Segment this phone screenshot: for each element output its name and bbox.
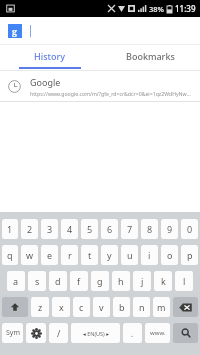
staticText: u — [127, 249, 133, 261]
staticText: d — [55, 275, 61, 287]
staticText: ◂ EN(US) ▸ — [83, 330, 109, 337]
staticText: o — [167, 249, 173, 261]
button[interactable]: m — [153, 297, 170, 317]
staticText: v — [99, 301, 104, 313]
button[interactable]: y — [101, 245, 118, 265]
staticText: f — [77, 275, 81, 287]
button[interactable]: n — [133, 297, 150, 317]
button[interactable]: z — [31, 297, 49, 317]
staticText: 11:39 — [175, 3, 196, 14]
staticText: Bookmarks — [126, 50, 175, 62]
staticText: 3 — [47, 223, 53, 235]
staticText: www. — [150, 329, 166, 337]
staticText: 9 — [167, 223, 173, 235]
button[interactable]: g — [8, 24, 22, 38]
button[interactable]: 6 — [101, 219, 118, 239]
button[interactable]: e — [41, 245, 58, 265]
staticText: x — [59, 301, 64, 313]
button[interactable]: Backspace — [173, 297, 198, 317]
button[interactable]: h — [112, 271, 130, 291]
staticText: i — [148, 249, 151, 261]
button[interactable]: r — [61, 245, 78, 265]
button[interactable]: x — [52, 297, 70, 317]
staticText: h — [118, 275, 124, 287]
staticText: History — [34, 50, 66, 62]
button[interactable]: f — [70, 271, 88, 291]
staticText: / — [57, 327, 61, 339]
button[interactable]: / — [49, 323, 68, 343]
staticText: g — [12, 25, 18, 37]
button[interactable]: c — [73, 297, 90, 317]
staticText: y — [107, 249, 112, 261]
button[interactable]: Bookmarks — [100, 45, 200, 67]
staticText: t — [88, 249, 92, 261]
button[interactable]: Google — [0, 71, 200, 101]
button[interactable]: g — [91, 271, 109, 291]
button[interactable]: k — [154, 271, 172, 291]
button[interactable]: Sym — [2, 323, 23, 343]
staticText: g — [97, 275, 103, 287]
staticText: 7 — [127, 223, 133, 235]
button[interactable]: i — [141, 245, 158, 265]
staticText: e — [47, 249, 53, 261]
button[interactable]: q — [2, 245, 18, 265]
staticText: Google — [30, 76, 61, 88]
button[interactable]: d — [49, 271, 67, 291]
button[interactable]: s — [28, 271, 46, 291]
button[interactable]: 4 — [61, 219, 78, 239]
staticText: 8 — [147, 223, 153, 235]
button[interactable]: j — [133, 271, 151, 291]
button[interactable]: a — [7, 271, 25, 291]
button[interactable]: v — [93, 297, 110, 317]
button[interactable]: t — [81, 245, 98, 265]
button[interactable]: l — [175, 271, 193, 291]
staticText: 6 — [107, 223, 113, 235]
staticText: l — [183, 275, 186, 287]
staticText: https://www.google.com/m/?gfe_rd=cr&dcr=… — [30, 90, 192, 97]
button[interactable]: 1 — [2, 219, 18, 239]
button[interactable]: ◂ EN(US) ▸ — [71, 323, 120, 343]
button[interactable]: Settings — [26, 323, 46, 343]
staticText: k — [161, 275, 166, 287]
staticText: c — [79, 301, 84, 313]
button[interactable]: 0 — [181, 219, 198, 239]
button[interactable]: 8 — [141, 219, 158, 239]
staticText: p — [187, 249, 193, 261]
staticText: . — [131, 328, 134, 339]
staticText: 0 — [187, 223, 193, 235]
staticText: 4 — [67, 223, 73, 235]
staticText: Sym — [6, 328, 20, 338]
button[interactable]: . — [123, 323, 142, 343]
button[interactable]: o — [161, 245, 178, 265]
button[interactable]: www. — [145, 323, 170, 343]
button[interactable]: History — [0, 45, 100, 67]
button[interactable]: p — [181, 245, 198, 265]
staticText: 1 — [7, 223, 13, 235]
staticText: q — [7, 249, 13, 261]
button[interactable]: u — [121, 245, 138, 265]
button[interactable]: 9 — [161, 219, 178, 239]
staticText: b — [119, 301, 125, 313]
staticText: 38% — [149, 4, 164, 14]
staticText: z — [38, 301, 43, 313]
staticText: w — [26, 249, 34, 261]
staticText: r — [68, 249, 72, 261]
staticText: j — [141, 275, 144, 287]
staticText: m — [157, 301, 166, 313]
button[interactable]: Search — [173, 323, 198, 343]
button[interactable]: 7 — [121, 219, 138, 239]
button[interactable]: 3 — [41, 219, 58, 239]
button[interactable]: Shift — [2, 297, 28, 317]
staticText: 2 — [27, 223, 33, 235]
staticText: a — [13, 275, 19, 287]
staticText: 5 — [87, 223, 93, 235]
button[interactable]: 5 — [81, 219, 98, 239]
button[interactable]: w — [21, 245, 38, 265]
staticText: n — [139, 301, 145, 313]
button[interactable]: b — [113, 297, 130, 317]
button[interactable]: 2 — [21, 219, 38, 239]
staticText: s — [35, 275, 40, 287]
